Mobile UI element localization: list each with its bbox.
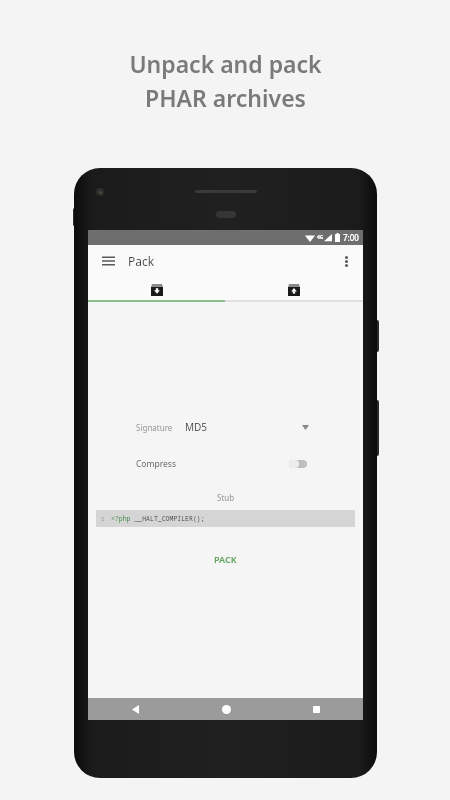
button[interactable]: Pack tab	[88, 277, 225, 302]
staticText: Compress	[136, 458, 176, 470]
button[interactable]: Compress	[136, 458, 315, 470]
staticText: 1	[101, 515, 105, 523]
button[interactable]: MD5	[185, 420, 315, 434]
staticText: <?php __HALT_COMPILER();	[111, 514, 205, 523]
staticText: PACK	[214, 553, 237, 565]
button[interactable]: Back	[124, 698, 146, 720]
button[interactable]: Recent apps	[305, 698, 327, 720]
staticText: 7:00	[343, 232, 359, 243]
staticText: Pack	[128, 253, 155, 269]
staticText: Stub	[217, 492, 235, 503]
button[interactable]: Open navigation drawer	[96, 249, 120, 273]
button[interactable]: Unpack tab	[225, 277, 363, 302]
staticText: MD5	[185, 420, 208, 434]
staticText: Unpack and pack	[129, 48, 322, 79]
button[interactable]: 1	[96, 510, 355, 527]
staticText: 4G	[317, 234, 324, 241]
button[interactable]: PACK	[204, 549, 247, 569]
staticText: PHAR archives	[145, 82, 306, 113]
button[interactable]: Home	[215, 698, 237, 720]
staticText: Signature	[136, 422, 173, 433]
button[interactable]: More options	[335, 250, 357, 272]
